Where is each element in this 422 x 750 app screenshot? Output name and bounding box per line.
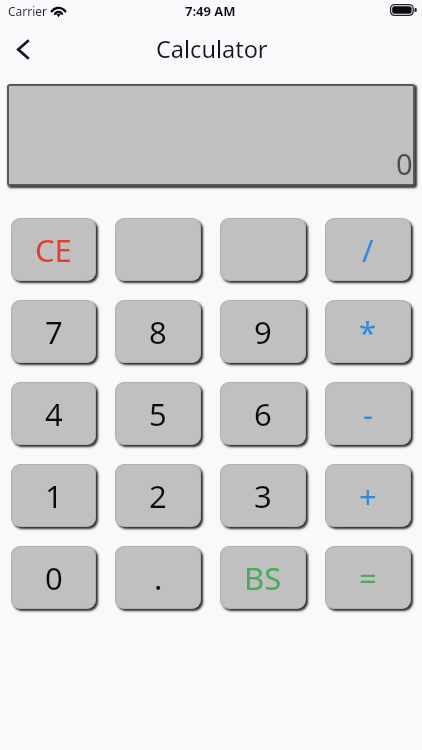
button[interactable]: Plus <box>325 464 411 527</box>
button[interactable]: Equals <box>325 546 411 609</box>
button[interactable]: 0 <box>9 86 413 184</box>
button[interactable]: 5 <box>115 382 201 445</box>
button[interactable]: Blank key 1 <box>115 218 201 281</box>
staticText: 1 <box>45 475 63 517</box>
staticText: * <box>359 311 377 353</box>
button[interactable]: Blank key 2 <box>220 218 306 281</box>
staticText: 8 <box>149 311 167 353</box>
button[interactable]: 0 <box>11 546 96 609</box>
staticText: / <box>362 229 374 271</box>
staticText: BS <box>244 557 282 599</box>
button[interactable]: 3 <box>220 464 306 527</box>
button[interactable]: Minus <box>325 382 411 445</box>
staticText: 0 <box>45 557 63 599</box>
button[interactable]: 9 <box>220 300 306 363</box>
staticText: 7 <box>45 311 63 353</box>
staticText: 2 <box>149 475 167 517</box>
button[interactable]: Back <box>1 26 45 72</box>
button[interactable]: Backspace <box>220 546 306 609</box>
button[interactable]: 4 <box>11 382 96 445</box>
button[interactable]: 8 <box>115 300 201 363</box>
staticText: 6 <box>254 393 272 435</box>
staticText: Carrier <box>8 3 48 19</box>
staticText: - <box>363 393 373 435</box>
staticText: 3 <box>254 475 272 517</box>
staticText: . <box>154 557 163 599</box>
button[interactable]: Decimal point <box>115 546 201 609</box>
button[interactable]: 7 <box>11 300 96 363</box>
staticText: CE <box>35 229 72 271</box>
staticText: = <box>359 557 377 599</box>
staticText: Calculator <box>156 33 268 65</box>
button[interactable]: Multiply <box>325 300 411 363</box>
staticText: 5 <box>149 393 167 435</box>
button[interactable]: Clear entry <box>11 218 96 281</box>
staticText: 9 <box>254 311 272 353</box>
staticText: 7:49 AM <box>185 2 236 20</box>
button[interactable]: Divide <box>325 218 411 281</box>
staticText: 0 <box>396 144 413 183</box>
button[interactable]: 6 <box>220 382 306 445</box>
button[interactable]: 1 <box>11 464 96 527</box>
staticText: + <box>359 475 377 517</box>
button[interactable]: 2 <box>115 464 201 527</box>
staticText: 4 <box>45 393 63 435</box>
